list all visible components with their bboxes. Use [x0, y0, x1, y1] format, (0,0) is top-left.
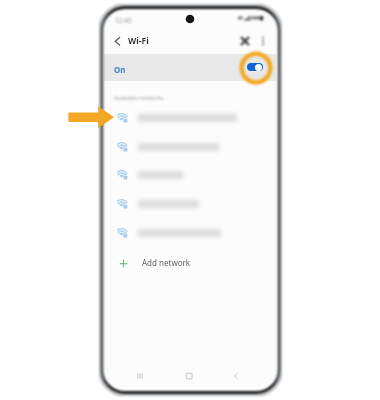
staticText: Add network: [142, 257, 191, 268]
staticText: On: [114, 64, 126, 75]
button[interactable]: [104, 164, 276, 193]
staticText: Wi-Fi: [128, 35, 149, 47]
button[interactable]: Add network: [104, 252, 276, 278]
button[interactable]: Wi-Fi on: [247, 63, 263, 71]
button[interactable]: Back: [111, 34, 125, 48]
button[interactable]: Recents: [132, 368, 148, 384]
staticText: 12:45: [115, 16, 132, 25]
button[interactable]: More options: [256, 34, 270, 48]
button[interactable]: Back: [228, 368, 244, 384]
staticText: Available networks: [114, 94, 164, 102]
button[interactable]: [104, 136, 276, 165]
button[interactable]: Home: [181, 368, 197, 384]
button[interactable]: Scan QR code: [238, 34, 252, 48]
button[interactable]: Wi-Fi: [128, 35, 149, 47]
button[interactable]: [104, 193, 276, 222]
button[interactable]: [104, 54, 276, 81]
button[interactable]: [104, 107, 276, 136]
button[interactable]: [104, 222, 276, 251]
